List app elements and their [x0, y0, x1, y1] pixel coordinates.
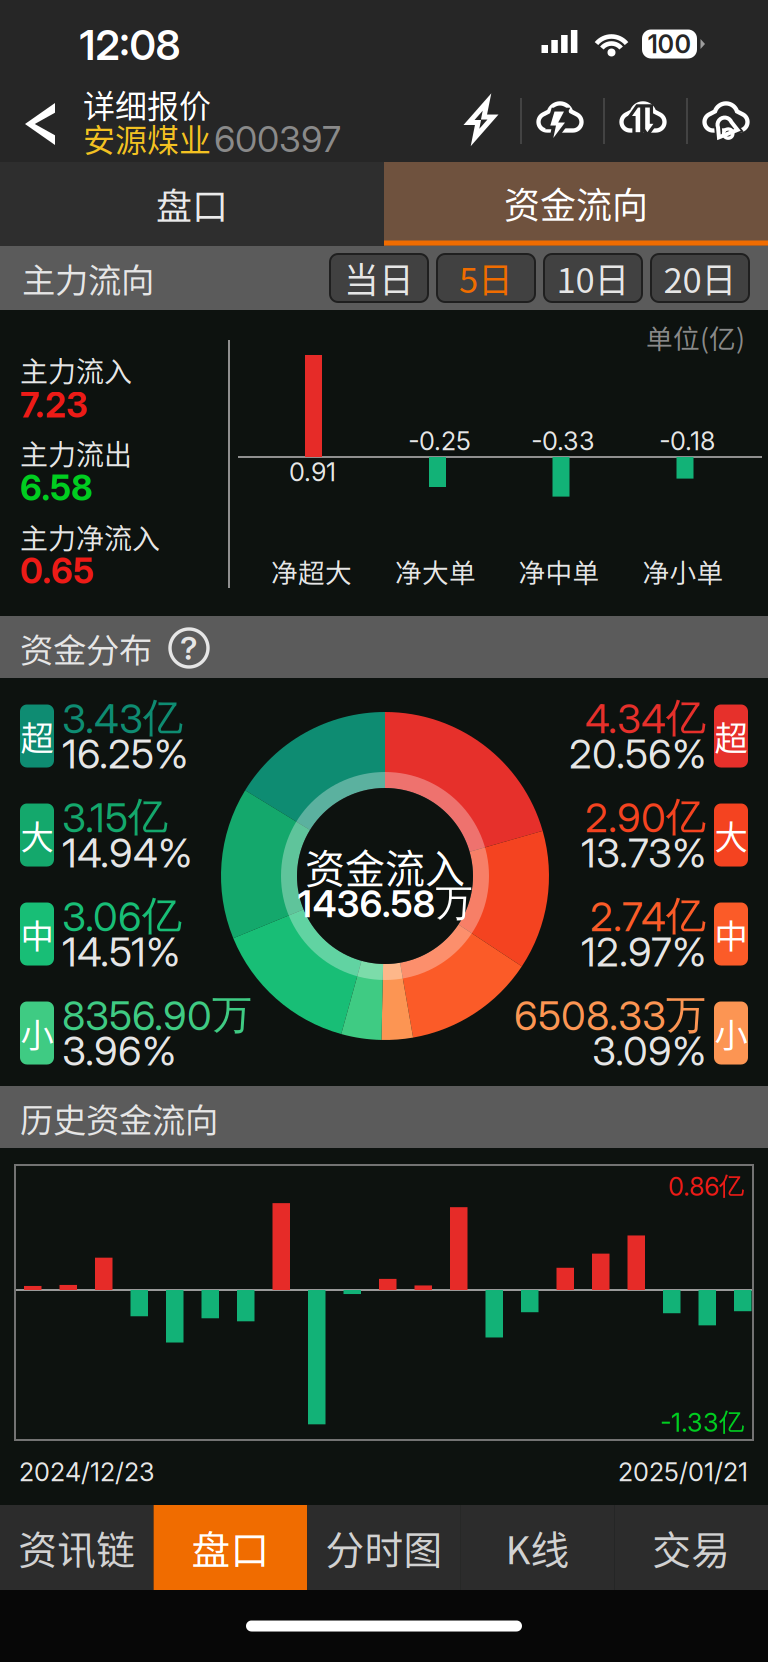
staticText: 净超大: [271, 552, 352, 590]
staticText: 2024/12/23: [19, 1457, 155, 1487]
staticText: 主力净流入: [20, 517, 160, 557]
staticText: 2.90亿: [585, 792, 706, 842]
button[interactable]: 资金流向: [384, 162, 768, 246]
staticText: 3.96%: [62, 1027, 176, 1075]
button[interactable]: 10日: [541, 250, 645, 306]
staticText: 2.74亿: [590, 891, 706, 941]
staticText: 大: [714, 811, 747, 859]
staticText: 0.86亿: [668, 1170, 744, 1202]
staticText: 净小单: [642, 552, 723, 590]
button[interactable]: 返回: [0, 79, 80, 169]
staticText: 主力流出: [20, 433, 132, 473]
staticText: 详细报价: [83, 81, 211, 127]
staticText: -0.18: [659, 426, 715, 456]
staticText: 主力流入: [20, 350, 132, 390]
staticText: 盘口: [191, 1519, 269, 1575]
staticText: 当日: [344, 253, 414, 303]
staticText: 12:08: [79, 20, 180, 70]
button[interactable]: 快捷交易: [453, 85, 509, 155]
staticText: 资讯链: [18, 1519, 135, 1575]
staticText: 安源煤业: [83, 115, 211, 161]
staticText: 600397: [214, 117, 341, 161]
staticText: 1436.58万: [297, 879, 472, 926]
button[interactable]: 交易: [614, 1505, 768, 1590]
button[interactable]: 5日: [434, 250, 538, 306]
staticText: 6.58: [20, 467, 93, 509]
staticText: K线: [506, 1519, 570, 1575]
staticText: -0.33: [531, 426, 595, 456]
button[interactable]: K线: [461, 1505, 614, 1590]
staticText: 6508.33万: [514, 990, 706, 1040]
button[interactable]: 云条件单: [529, 85, 591, 155]
staticText: 资金分布: [20, 624, 152, 672]
button[interactable]: 20日: [648, 250, 752, 306]
button[interactable]: 当日: [327, 250, 431, 306]
staticText: 大: [20, 811, 53, 859]
staticText: 中: [714, 910, 747, 958]
staticText: 20日: [663, 253, 736, 303]
staticText: 3.15亿: [62, 792, 168, 842]
staticText: 净中单: [518, 552, 599, 590]
staticText: 历史资金流向: [20, 1094, 218, 1142]
staticText: 100: [647, 29, 691, 59]
staticText: 超: [20, 712, 53, 760]
staticText: 2025/01/21: [618, 1457, 748, 1487]
staticText: 16.25%: [62, 730, 188, 778]
staticText: 14.51%: [62, 928, 180, 976]
staticText: 单位(亿): [646, 318, 745, 356]
staticText: -1.33亿: [660, 1406, 744, 1438]
button[interactable]: 盘口: [0, 162, 384, 246]
staticText: 资金流向: [504, 177, 648, 229]
staticText: 资金流入: [305, 837, 465, 895]
staticText: 分时图: [325, 1519, 442, 1575]
button[interactable]: 说明: [165, 624, 213, 672]
staticText: 中: [20, 910, 53, 958]
staticText: 7.23: [20, 384, 88, 426]
staticText: 10日: [556, 253, 629, 303]
staticText: 主力流向: [22, 254, 154, 302]
staticText: ?: [180, 629, 198, 667]
staticText: 4.34亿: [585, 693, 706, 743]
staticText: 8356.90万: [62, 990, 252, 1040]
staticText: 0.65: [20, 550, 94, 592]
button[interactable]: 分时图: [307, 1505, 461, 1590]
staticText: 3.43亿: [62, 693, 183, 743]
staticText: 盘口: [156, 178, 228, 230]
staticText: 20.56%: [569, 730, 706, 778]
staticText: 小: [20, 1009, 53, 1057]
button[interactable]: 云买卖: [612, 85, 674, 155]
staticText: 14.94%: [62, 829, 192, 877]
staticText: 小: [714, 1009, 747, 1057]
staticText: -0.25: [408, 426, 471, 456]
button[interactable]: 云提醒: [695, 85, 757, 155]
staticText: 12.97%: [581, 928, 706, 976]
staticText: 13.73%: [581, 829, 706, 877]
button[interactable]: 盘口: [154, 1505, 307, 1590]
button[interactable]: 资讯链: [0, 1505, 154, 1590]
staticText: 超: [714, 712, 747, 760]
staticText: 交易: [652, 1519, 730, 1575]
staticText: 净大单: [395, 552, 476, 590]
staticText: 5日: [459, 253, 513, 303]
staticText: 3.09%: [592, 1027, 706, 1075]
staticText: 0.91: [289, 457, 336, 487]
staticText: 3.06亿: [62, 891, 182, 941]
